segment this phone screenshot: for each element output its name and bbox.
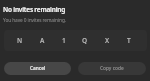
staticText: 1 bbox=[62, 36, 66, 45]
staticText: N bbox=[17, 36, 23, 45]
staticText: A bbox=[40, 36, 45, 45]
staticText: Copy code bbox=[100, 65, 124, 72]
staticText: X bbox=[105, 36, 110, 45]
button[interactable]: Copy code bbox=[78, 62, 146, 75]
button[interactable]: N bbox=[4, 30, 147, 51]
staticText: T bbox=[127, 36, 131, 45]
button[interactable]: Cancel bbox=[4, 62, 71, 75]
staticText: You have 0 invites remaining. bbox=[3, 17, 66, 24]
staticText: Q bbox=[82, 36, 88, 45]
staticText: Cancel bbox=[30, 65, 46, 72]
staticText: No invites remaining bbox=[3, 5, 66, 14]
